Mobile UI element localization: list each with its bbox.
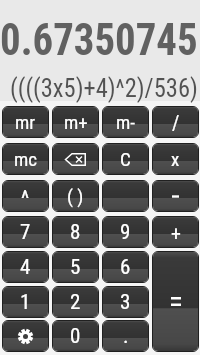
staticText: 7 [20,220,31,245]
button[interactable]: mc [3,144,48,174]
button[interactable]: + [153,217,198,247]
button[interactable]: / [153,107,198,137]
staticText: 1 [20,290,31,315]
staticText: . [123,324,129,349]
staticText: 6 [120,255,131,280]
button[interactable]: mr [3,107,48,137]
staticText: C [120,148,131,170]
staticText: x [171,148,180,170]
button[interactable]: 6 [103,252,148,282]
button[interactable]: C [103,144,148,174]
button[interactable] [153,252,198,351]
staticText: 0.67350745 [0,14,198,66]
staticText: 8 [70,220,81,245]
staticText: 4 [20,255,31,280]
button[interactable]: x [153,144,198,174]
button[interactable]: 1 [3,287,48,317]
staticText: m+ [64,111,88,133]
button[interactable]: 8 [53,217,98,247]
button[interactable] [153,181,198,211]
button[interactable]: 9 [103,217,148,247]
button[interactable]: ( ) [53,181,98,211]
button[interactable] [103,181,148,211]
staticText: / [172,111,180,134]
staticText: mr [15,111,36,133]
button[interactable]: 3 [103,287,148,317]
staticText: 3 [120,290,131,315]
staticText: ( ) [67,185,84,207]
button[interactable]: ^ [3,181,48,211]
button[interactable] [53,144,98,174]
staticText: ^ [21,186,30,212]
staticText: 9 [120,220,131,245]
staticText: m- [116,111,136,133]
button[interactable] [3,321,48,351]
button[interactable]: m+ [53,107,98,137]
staticText: mc [14,148,38,170]
staticText: 2 [70,290,81,315]
staticText: ((((3x5)+4)^2)/536) [10,72,198,103]
button[interactable]: m- [103,107,148,137]
button[interactable]: . [103,321,148,351]
staticText: + [171,221,181,244]
button[interactable]: 7 [3,217,48,247]
staticText: 5 [70,255,81,280]
button[interactable]: 0 [53,321,98,351]
staticText: 0 [70,324,81,349]
button[interactable]: 2 [53,287,98,317]
button[interactable]: 4 [3,252,48,282]
button[interactable]: 5 [53,252,98,282]
